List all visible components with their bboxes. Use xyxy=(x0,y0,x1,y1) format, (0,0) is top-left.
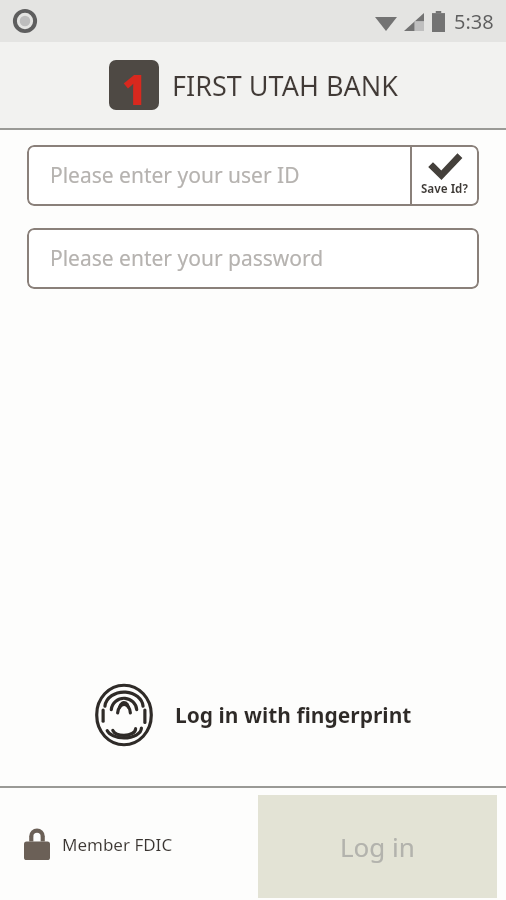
staticText: Member FDIC xyxy=(62,833,173,856)
staticText: 5:38 xyxy=(454,8,494,35)
button[interactable]: Log in xyxy=(258,795,497,898)
button[interactable]: Please enter your password xyxy=(27,228,479,289)
staticText: 1 xyxy=(122,60,147,110)
staticText: Log in xyxy=(340,829,415,864)
staticText: Log in with fingerprint xyxy=(175,701,412,730)
button[interactable]: Member FDIC xyxy=(24,828,173,860)
staticText: Please enter your password xyxy=(50,244,324,273)
button[interactable]: Log in with fingerprint xyxy=(0,672,506,758)
staticText: FIRST UTAH BANK xyxy=(172,67,398,104)
button[interactable]: Save Id xyxy=(410,145,479,206)
button[interactable]: Please enter your user ID xyxy=(27,145,410,206)
staticText: Save Id? xyxy=(421,181,468,197)
staticText: Please enter your user ID xyxy=(50,161,300,190)
